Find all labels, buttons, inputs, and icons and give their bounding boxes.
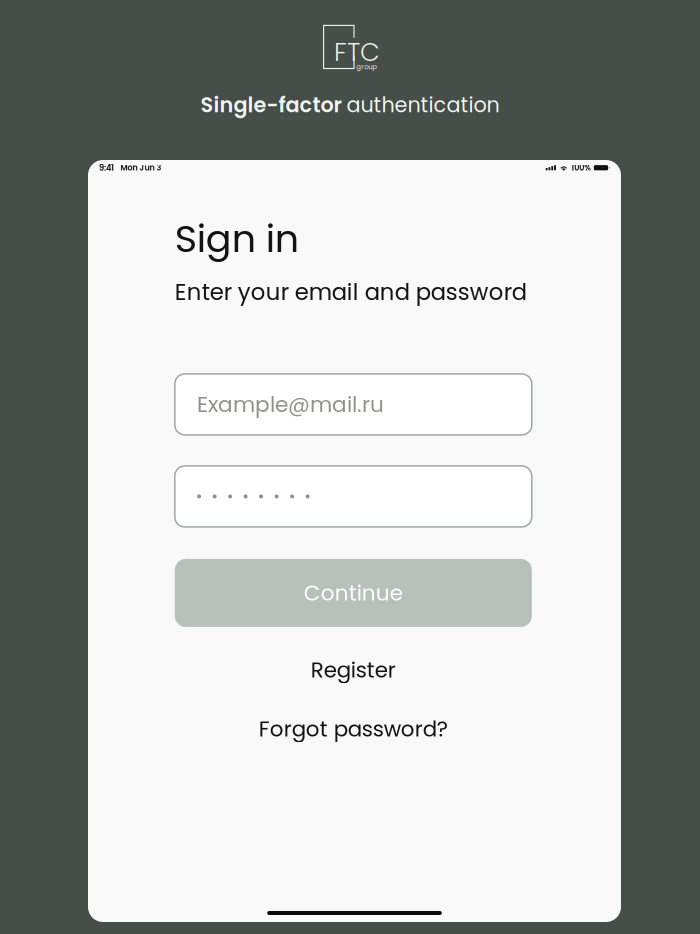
staticText: 100%: [571, 162, 591, 173]
staticText: group: [356, 62, 377, 72]
staticText: Sign in: [175, 212, 299, 265]
button[interactable]: Example@mail.ru: [175, 374, 532, 435]
button[interactable]: [175, 466, 532, 527]
staticText: Forgot password?: [259, 714, 448, 744]
button[interactable]: Continue: [175, 559, 532, 627]
staticText: Continue: [304, 578, 403, 608]
staticText: authentication: [346, 90, 499, 119]
staticText: FTC: [334, 34, 380, 70]
staticText: Example@mail.ru: [197, 389, 384, 419]
staticText: Register: [311, 655, 396, 685]
staticText: Mon Jun 3: [120, 162, 161, 173]
staticText: Single-factor: [200, 90, 346, 119]
staticText: 9:41: [99, 162, 114, 174]
button[interactable]: Forgot password?: [175, 711, 532, 747]
button[interactable]: Register: [175, 652, 532, 688]
staticText: Enter your email and password: [175, 276, 527, 308]
